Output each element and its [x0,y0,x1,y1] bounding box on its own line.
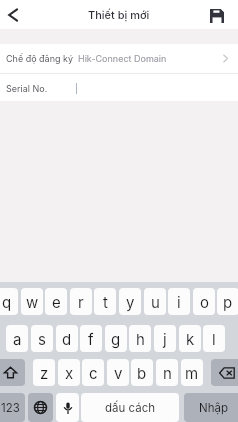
staticText: p [223,293,233,311]
staticText: w [26,293,39,311]
button[interactable]: l [203,325,225,352]
button[interactable]: Save [206,5,228,27]
staticText: o [200,293,209,311]
button[interactable]: i [168,288,190,315]
staticText: i [177,293,181,311]
staticText: h [136,330,145,348]
button[interactable]: t [94,288,116,315]
button[interactable]: p [217,288,238,315]
button[interactable]: h [129,325,151,352]
button[interactable]: Numbers [0,393,25,422]
button[interactable]: k [179,325,201,352]
button[interactable]: m [181,359,203,386]
staticText: n [163,364,172,382]
button[interactable]: e [45,288,67,315]
button[interactable]: y [119,288,141,315]
button[interactable]: w [21,288,43,315]
staticText: s [38,330,46,348]
button[interactable]: z [33,359,55,386]
button[interactable]: d [56,325,78,352]
button[interactable]: a [6,325,28,352]
staticText: m [185,364,199,382]
button[interactable]: Dictate [56,393,79,422]
button[interactable]: j [154,325,176,352]
button[interactable]: b [131,359,153,386]
staticText: Serial No. [6,83,48,94]
staticText: u [151,293,160,311]
button[interactable]: c [82,359,104,386]
button[interactable]: s [31,325,53,352]
button[interactable]: Back [3,4,25,26]
button[interactable]: u [144,288,166,315]
staticText: t [103,293,108,311]
button[interactable]: q [0,288,18,315]
button[interactable]: g [105,325,127,352]
button[interactable]: f [80,325,102,352]
staticText: x [65,364,74,382]
staticText: Hik-Connect Domain [78,53,167,64]
staticText: Nhập [199,401,228,415]
button[interactable]: Backspace [211,359,238,386]
staticText: r [78,293,84,311]
button[interactable]: Return [184,393,238,422]
staticText: d [62,330,72,348]
staticText: Thiết bị mới [88,8,150,21]
staticText: g [111,330,121,348]
staticText: f [88,330,94,348]
button[interactable]: Space [81,393,179,422]
staticText: k [186,330,195,348]
staticText: y [126,293,135,311]
staticText: Chế độ đăng ký [6,53,74,64]
staticText: e [52,293,61,311]
staticText: 123 [1,401,20,415]
staticText: b [137,364,147,382]
staticText: z [40,364,49,382]
button[interactable]: n [156,359,178,386]
staticText: j [163,330,167,348]
staticText: c [89,364,98,382]
staticText: l [212,330,216,348]
button[interactable]: Chế độ đăng ký [0,44,238,72]
staticText: dấu cách [105,401,156,415]
button[interactable]: v [107,359,129,386]
staticText: a [13,330,22,348]
button[interactable]: Change keyboard [28,393,53,422]
button[interactable]: Serial No. [0,74,238,102]
button[interactable]: x [58,359,80,386]
staticText: q [2,293,12,311]
button[interactable]: o [193,288,215,315]
staticText: v [114,364,123,382]
button[interactable]: Shift [0,359,25,386]
button[interactable]: r [70,288,92,315]
